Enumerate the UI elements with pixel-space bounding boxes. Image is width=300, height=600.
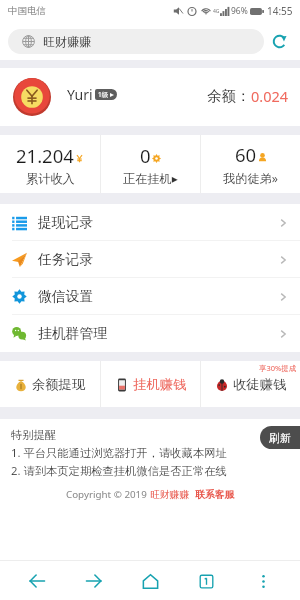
staticText: 收徒赚钱 <box>233 376 287 393</box>
staticText: 刷新 <box>269 431 291 445</box>
button[interactable]: 挂机赚钱 <box>101 361 200 407</box>
staticText: 96% <box>231 5 248 17</box>
button[interactable]: 0 <box>101 135 200 193</box>
staticText: 2. 请到本页定期检查挂机微信是否正常在线 <box>11 463 227 478</box>
button[interactable]: Back <box>18 562 56 600</box>
staticText: Copyright © 2019 <box>66 488 150 501</box>
staticText: 任务记录 <box>38 251 94 268</box>
button[interactable]: 余额提现 <box>0 361 100 407</box>
button[interactable]: 刷新 <box>260 426 300 449</box>
button[interactable]: Home <box>131 562 169 600</box>
staticText: 微信设置 <box>38 288 94 305</box>
staticText: 特别提醒 <box>11 428 57 442</box>
staticText: 1. 平台只能通过浏览器打开，请收藏本网址 <box>11 445 227 460</box>
staticText: Yuri <box>67 85 93 104</box>
staticText: 我的徒弟» <box>223 170 278 187</box>
button[interactable]: 挂机群管理 <box>0 315 300 352</box>
button[interactable]: Tabs <box>187 562 225 600</box>
staticText: 旺财赚赚 <box>43 34 91 49</box>
staticText: 享30%提成 <box>259 363 297 373</box>
button[interactable]: 60 <box>201 135 300 193</box>
staticText: 余额： <box>207 87 251 105</box>
staticText: 提现记录 <box>38 214 94 231</box>
button[interactable]: Menu <box>244 562 282 600</box>
button[interactable]: 任务记录 <box>0 241 300 278</box>
button[interactable]: Forward <box>75 562 113 600</box>
staticText: 14:55 <box>267 4 293 18</box>
staticText: 累计收入 <box>26 171 75 186</box>
staticText: 4G <box>213 8 220 15</box>
button[interactable]: 收徒赚钱 <box>201 361 300 407</box>
button[interactable]: Refresh <box>264 26 294 56</box>
staticText: 60 <box>235 142 257 167</box>
button[interactable]: 旺财赚赚 <box>8 29 264 54</box>
staticText: 挂机群管理 <box>38 325 107 342</box>
staticText: 旺财赚赚 <box>150 489 190 501</box>
button[interactable]: 微信设置 <box>0 278 300 315</box>
staticText: 21.204 <box>16 143 74 168</box>
staticText: 余额提现 <box>32 376 86 393</box>
button[interactable]: 21.204 <box>0 135 100 193</box>
staticText: 1级 <box>98 90 109 99</box>
staticText: 正在挂机▸ <box>123 171 178 186</box>
staticText: 中国电信 <box>8 5 46 17</box>
staticText: 联系客服 <box>195 489 235 501</box>
button[interactable]: 提现记录 <box>0 204 300 241</box>
staticText: 0 <box>140 143 151 168</box>
staticText: 0.024 <box>251 86 289 106</box>
staticText: 挂机赚钱 <box>133 376 187 393</box>
